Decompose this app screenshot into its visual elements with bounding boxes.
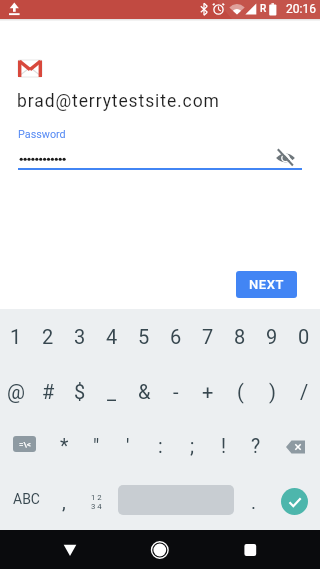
button[interactable]: 1 2 bbox=[80, 474, 112, 530]
staticText: , bbox=[62, 491, 66, 513]
staticText: : bbox=[158, 435, 163, 458]
staticText: brad@terrytestsite.com bbox=[17, 91, 220, 112]
button[interactable] bbox=[234, 534, 266, 566]
staticText: 1 bbox=[10, 325, 22, 348]
button[interactable]: =\< bbox=[0, 419, 48, 474]
staticText: ABC bbox=[13, 491, 40, 507]
staticText: ; bbox=[190, 435, 195, 458]
staticText: ( bbox=[237, 380, 244, 403]
button[interactable]: 3 bbox=[64, 309, 96, 364]
staticText: Password bbox=[18, 128, 66, 141]
button[interactable] bbox=[272, 145, 299, 172]
staticText: 8 bbox=[234, 325, 246, 348]
button[interactable] bbox=[272, 419, 320, 474]
staticText: ) bbox=[269, 380, 276, 403]
button[interactable]: - bbox=[160, 364, 192, 419]
staticText: . bbox=[251, 491, 257, 513]
staticText: _ bbox=[107, 380, 117, 403]
staticText: @ bbox=[7, 380, 25, 403]
staticText: 7 bbox=[202, 325, 214, 348]
staticText: * bbox=[60, 435, 69, 458]
button[interactable]: + bbox=[192, 364, 224, 419]
staticText: 1 2 bbox=[91, 493, 102, 502]
staticText: 3 bbox=[74, 325, 86, 348]
staticText: & bbox=[138, 380, 151, 403]
staticText: 2 bbox=[42, 325, 54, 348]
button[interactable]: # bbox=[32, 364, 64, 419]
button[interactable]: , bbox=[48, 474, 80, 530]
staticText: NEXT bbox=[249, 277, 285, 292]
button[interactable]: ? bbox=[240, 419, 272, 474]
staticText: ' bbox=[126, 435, 130, 458]
button[interactable] bbox=[144, 534, 176, 566]
staticText: - bbox=[173, 380, 179, 403]
button[interactable]: 4 bbox=[96, 309, 128, 364]
staticText: 6 bbox=[170, 325, 182, 348]
button[interactable]: $ bbox=[64, 364, 96, 419]
staticText: ? bbox=[251, 435, 261, 458]
button[interactable]: : bbox=[144, 419, 176, 474]
button[interactable]: 9 bbox=[256, 309, 288, 364]
button[interactable]: ) bbox=[256, 364, 288, 419]
staticText: 9 bbox=[266, 325, 278, 348]
button[interactable]: ! bbox=[208, 419, 240, 474]
button[interactable]: 0 bbox=[288, 309, 320, 364]
staticText: 5 bbox=[138, 325, 150, 348]
staticText: # bbox=[42, 380, 55, 403]
button[interactable]: 7 bbox=[192, 309, 224, 364]
staticText: + bbox=[202, 380, 214, 403]
staticText: / bbox=[300, 380, 309, 403]
button[interactable]: @ bbox=[0, 364, 32, 419]
staticText: R bbox=[260, 3, 267, 15]
staticText: 3 4 bbox=[91, 502, 102, 511]
button[interactable]: ; bbox=[176, 419, 208, 474]
button[interactable]: _ bbox=[96, 364, 128, 419]
staticText: $ bbox=[74, 380, 86, 403]
button[interactable]: NEXT bbox=[236, 271, 297, 298]
button[interactable] bbox=[281, 488, 308, 515]
button[interactable] bbox=[272, 474, 320, 530]
button[interactable]: . bbox=[240, 474, 272, 530]
button[interactable]: ( bbox=[224, 364, 256, 419]
button[interactable] bbox=[112, 474, 240, 530]
staticText: 4 bbox=[106, 325, 118, 348]
button[interactable]: 8 bbox=[224, 309, 256, 364]
button[interactable]: 5 bbox=[128, 309, 160, 364]
staticText: =\< bbox=[19, 440, 31, 449]
button[interactable] bbox=[54, 534, 86, 566]
button[interactable]: ABC bbox=[0, 474, 48, 530]
button[interactable]: ' bbox=[112, 419, 144, 474]
button[interactable]: / bbox=[288, 364, 320, 419]
button[interactable]: 2 bbox=[32, 309, 64, 364]
staticText: ! bbox=[221, 435, 227, 458]
button[interactable]: & bbox=[128, 364, 160, 419]
button[interactable]: * bbox=[48, 419, 80, 474]
button[interactable]: 1 bbox=[0, 309, 32, 364]
staticText: 20:16 bbox=[286, 2, 316, 16]
button[interactable]: " bbox=[80, 419, 112, 474]
button[interactable]: 6 bbox=[160, 309, 192, 364]
staticText: " bbox=[93, 435, 100, 458]
staticText: 0 bbox=[298, 325, 310, 348]
